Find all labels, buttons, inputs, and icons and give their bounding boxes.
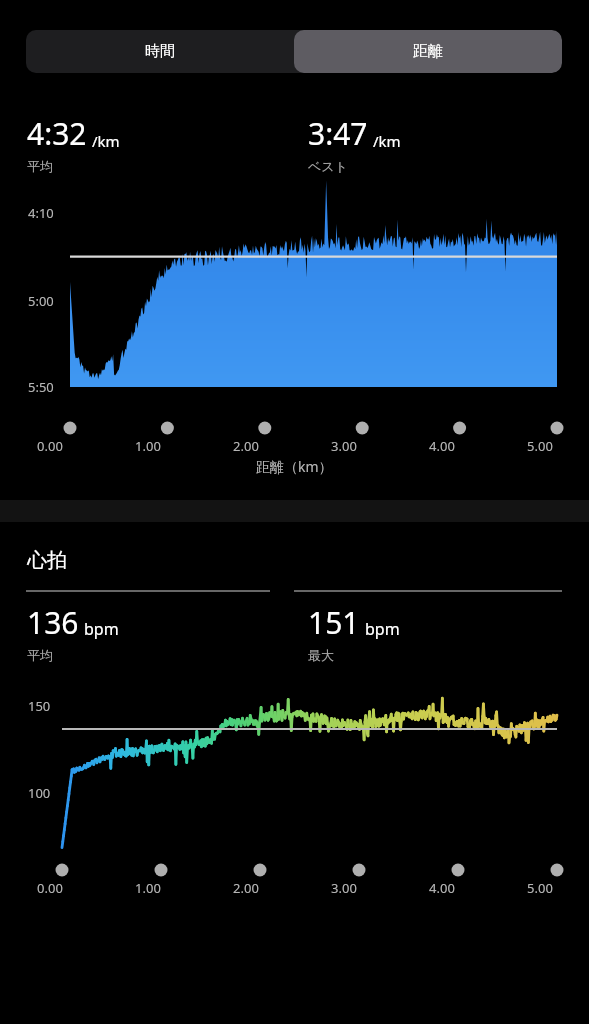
staticText: 4:10: [28, 204, 54, 222]
staticText: 距離（km）: [256, 457, 333, 476]
staticText: 4.00: [429, 879, 455, 895]
staticText: bpm: [365, 618, 400, 640]
button[interactable]: 距離: [294, 30, 562, 73]
staticText: 4:32: [27, 113, 87, 154]
staticText: 1.00: [135, 437, 161, 453]
staticText: 4.00: [429, 437, 455, 453]
staticText: 0.00: [37, 437, 63, 453]
staticText: 時間: [145, 42, 175, 61]
button[interactable]: 時間: [26, 30, 294, 73]
staticText: 平均: [27, 647, 53, 663]
staticText: /km: [92, 131, 120, 151]
staticText: 1.00: [135, 879, 161, 895]
staticText: bpm: [84, 618, 119, 640]
staticText: 3:47: [308, 113, 368, 154]
staticText: 0.00: [37, 879, 63, 895]
staticText: 2.00: [233, 879, 259, 895]
staticText: 5.00: [527, 437, 553, 453]
staticText: 距離: [413, 42, 443, 61]
staticText: ベスト: [308, 158, 348, 174]
staticText: 心拍: [27, 548, 67, 573]
staticText: 5:00: [28, 292, 54, 310]
staticText: 136: [27, 602, 79, 643]
staticText: 3.00: [331, 437, 357, 453]
staticText: 150: [28, 697, 51, 715]
staticText: 100: [28, 784, 51, 802]
staticText: 151: [308, 602, 360, 643]
staticText: 5.00: [527, 879, 553, 895]
staticText: 平均: [27, 158, 53, 174]
staticText: 5:50: [28, 378, 54, 396]
staticText: 2.00: [233, 437, 259, 453]
staticText: /km: [373, 131, 401, 151]
staticText: 最大: [308, 647, 334, 663]
staticText: 3.00: [331, 879, 357, 895]
